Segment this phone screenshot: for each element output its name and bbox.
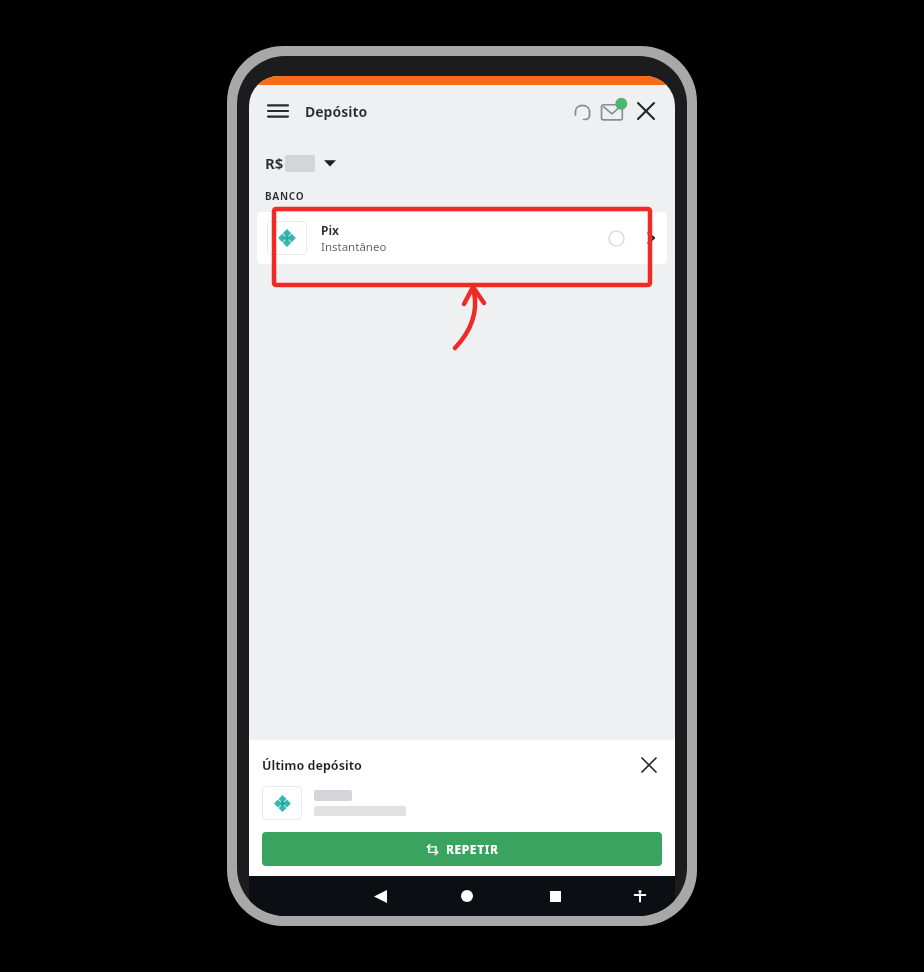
button[interactable]: Recent apps (540, 881, 570, 911)
staticText: Pix (321, 222, 339, 238)
button[interactable]: Close (631, 96, 661, 126)
staticText: REPETIR (446, 841, 499, 857)
button[interactable]: Back (365, 881, 395, 911)
button[interactable]: Home (452, 881, 482, 911)
button[interactable]: Accessibility (627, 883, 653, 909)
staticText: Instantâneo (321, 239, 387, 255)
button[interactable]: Pix (257, 212, 667, 264)
button[interactable]: Support (567, 96, 597, 126)
staticText: Último depósito (262, 757, 362, 774)
button[interactable]: Messages (597, 94, 631, 128)
button[interactable]: Dismiss last deposit (636, 752, 662, 778)
staticText: R$ (265, 153, 284, 173)
button[interactable]: R$ (265, 153, 675, 173)
staticText: BANCO (265, 189, 305, 203)
button[interactable]: Menu (263, 96, 293, 126)
staticText: Depósito (305, 102, 368, 121)
button[interactable]: REPETIR (262, 832, 662, 866)
